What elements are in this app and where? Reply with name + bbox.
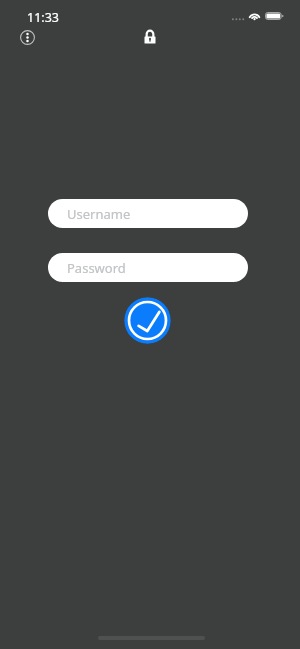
button[interactable]: Username: [48, 199, 248, 228]
staticText: 11:33: [27, 9, 59, 26]
button[interactable]: Password: [48, 253, 248, 282]
staticText: Password: [67, 259, 126, 277]
button[interactable]: Submit: [124, 297, 171, 344]
button[interactable]: Locked: [143, 28, 157, 45]
button[interactable]: More options: [20, 30, 35, 45]
staticText: Username: [67, 205, 131, 223]
